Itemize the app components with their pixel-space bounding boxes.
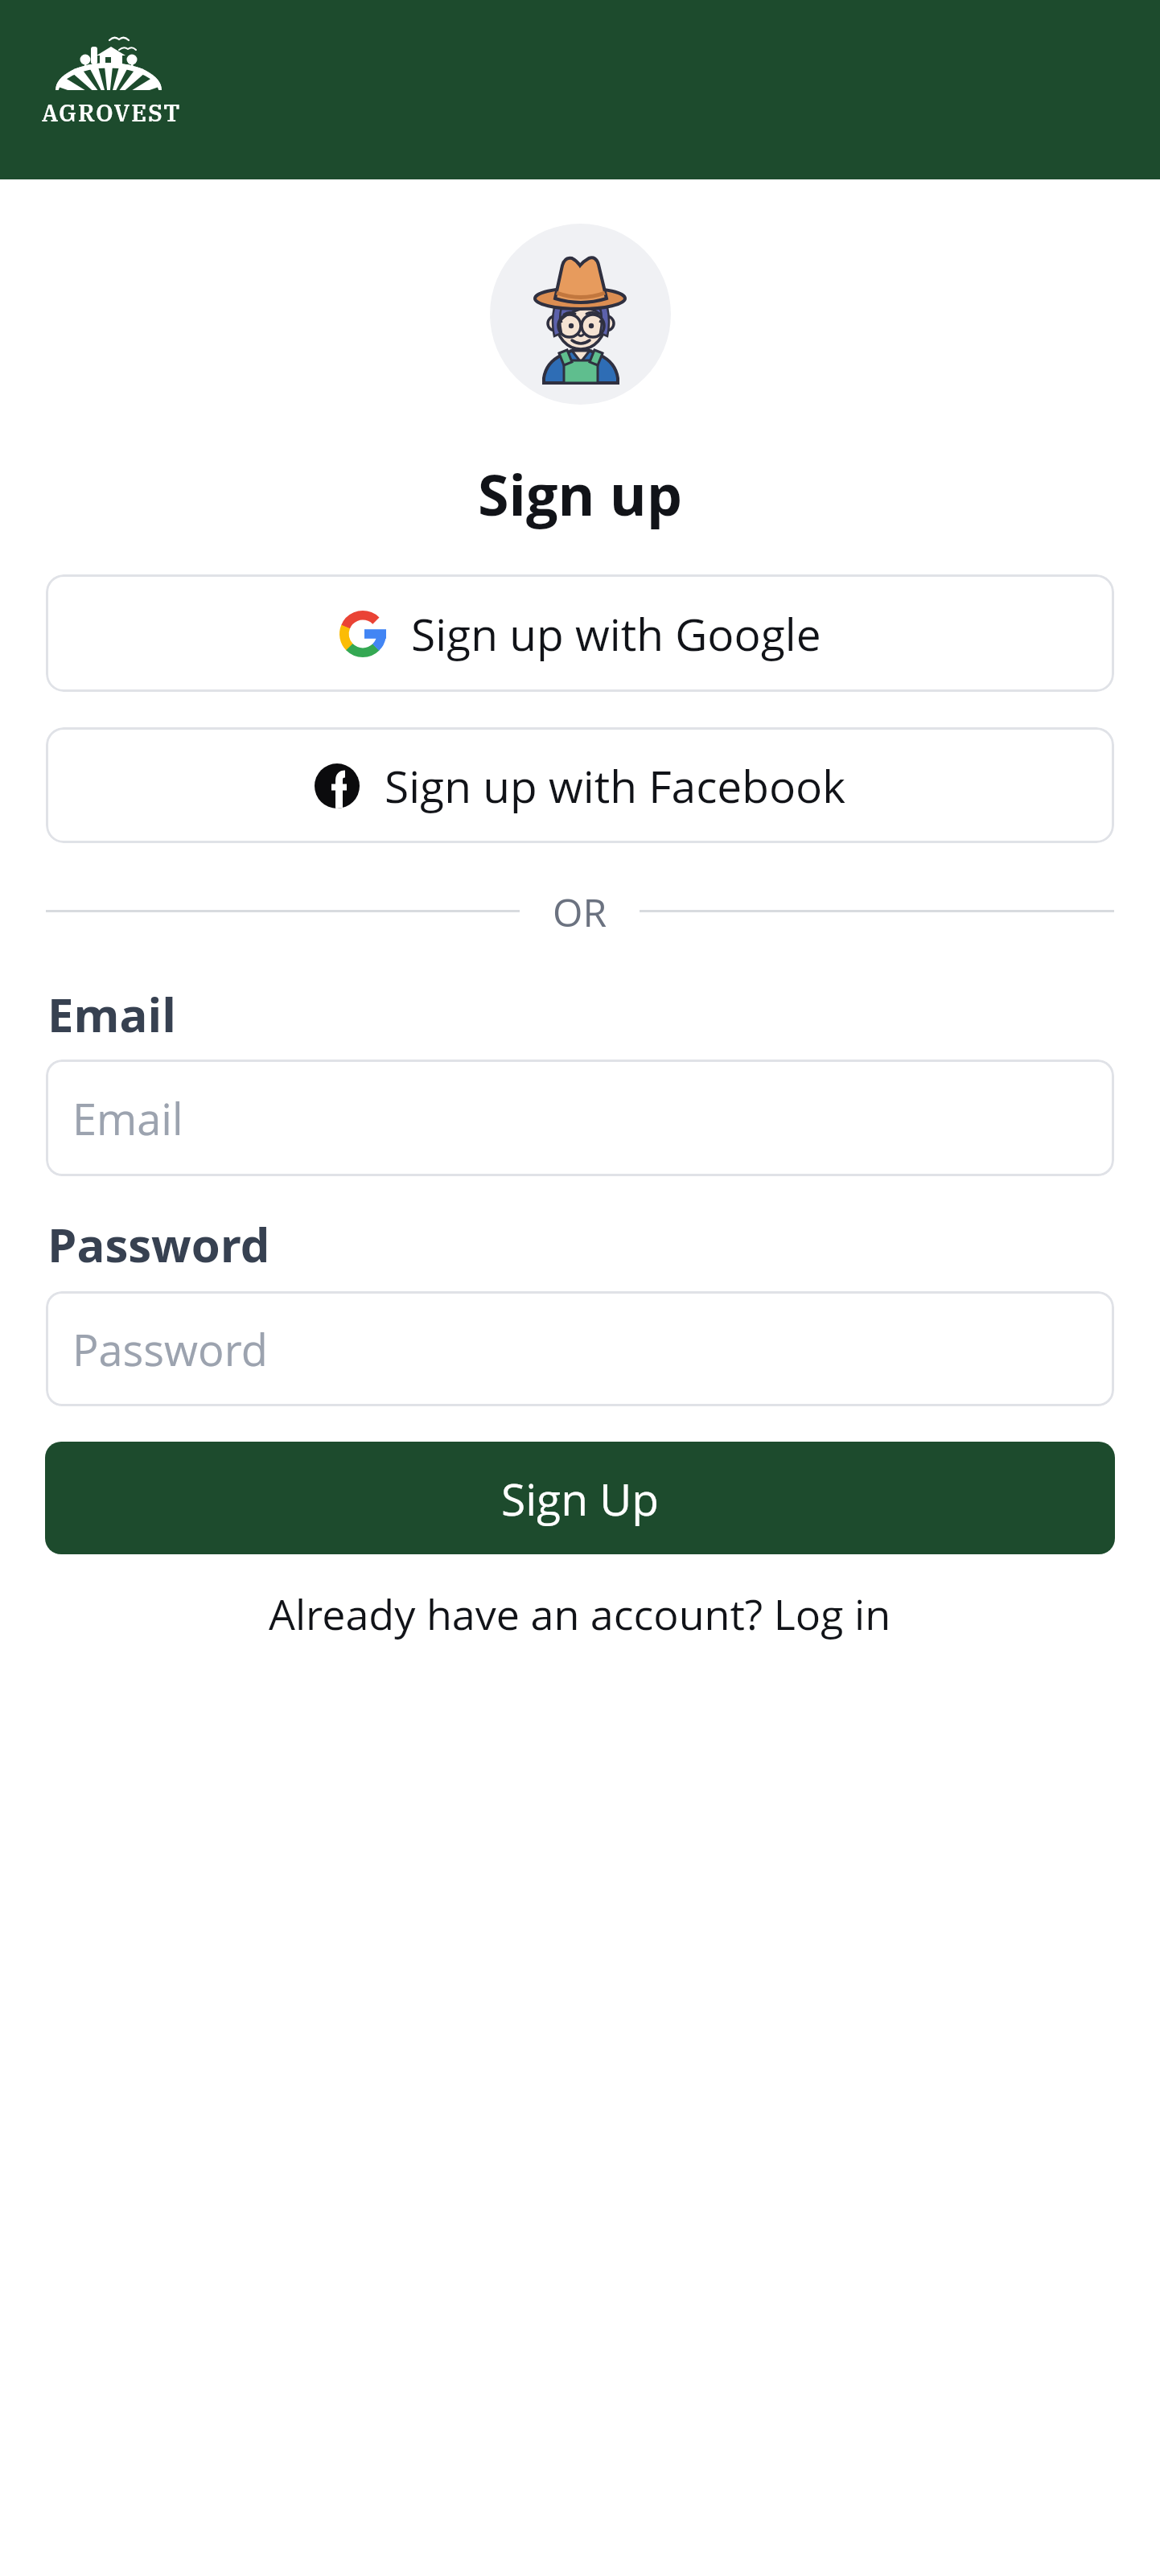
staticText: OR	[553, 886, 607, 938]
staticText: Sign Up	[501, 1468, 660, 1529]
button[interactable]: Password	[46, 1291, 1114, 1406]
button[interactable]: Email	[46, 1060, 1114, 1176]
button[interactable]: Already have an account? Log in	[269, 1585, 891, 1642]
button[interactable]: Sign up with Facebook	[46, 727, 1114, 843]
button[interactable]: Sign up with Google	[46, 574, 1114, 692]
staticText: Email	[72, 1088, 183, 1148]
staticText: Email	[47, 982, 176, 1046]
staticText: Sign up with Google	[411, 603, 821, 664]
staticText: Sign up with Facebook	[385, 755, 846, 816]
staticText: AGROVEST	[42, 97, 182, 128]
staticText: Password	[72, 1319, 268, 1379]
staticText: Password	[47, 1212, 270, 1276]
staticText: Sign up	[478, 455, 682, 532]
button[interactable]: Sign Up	[45, 1442, 1115, 1554]
